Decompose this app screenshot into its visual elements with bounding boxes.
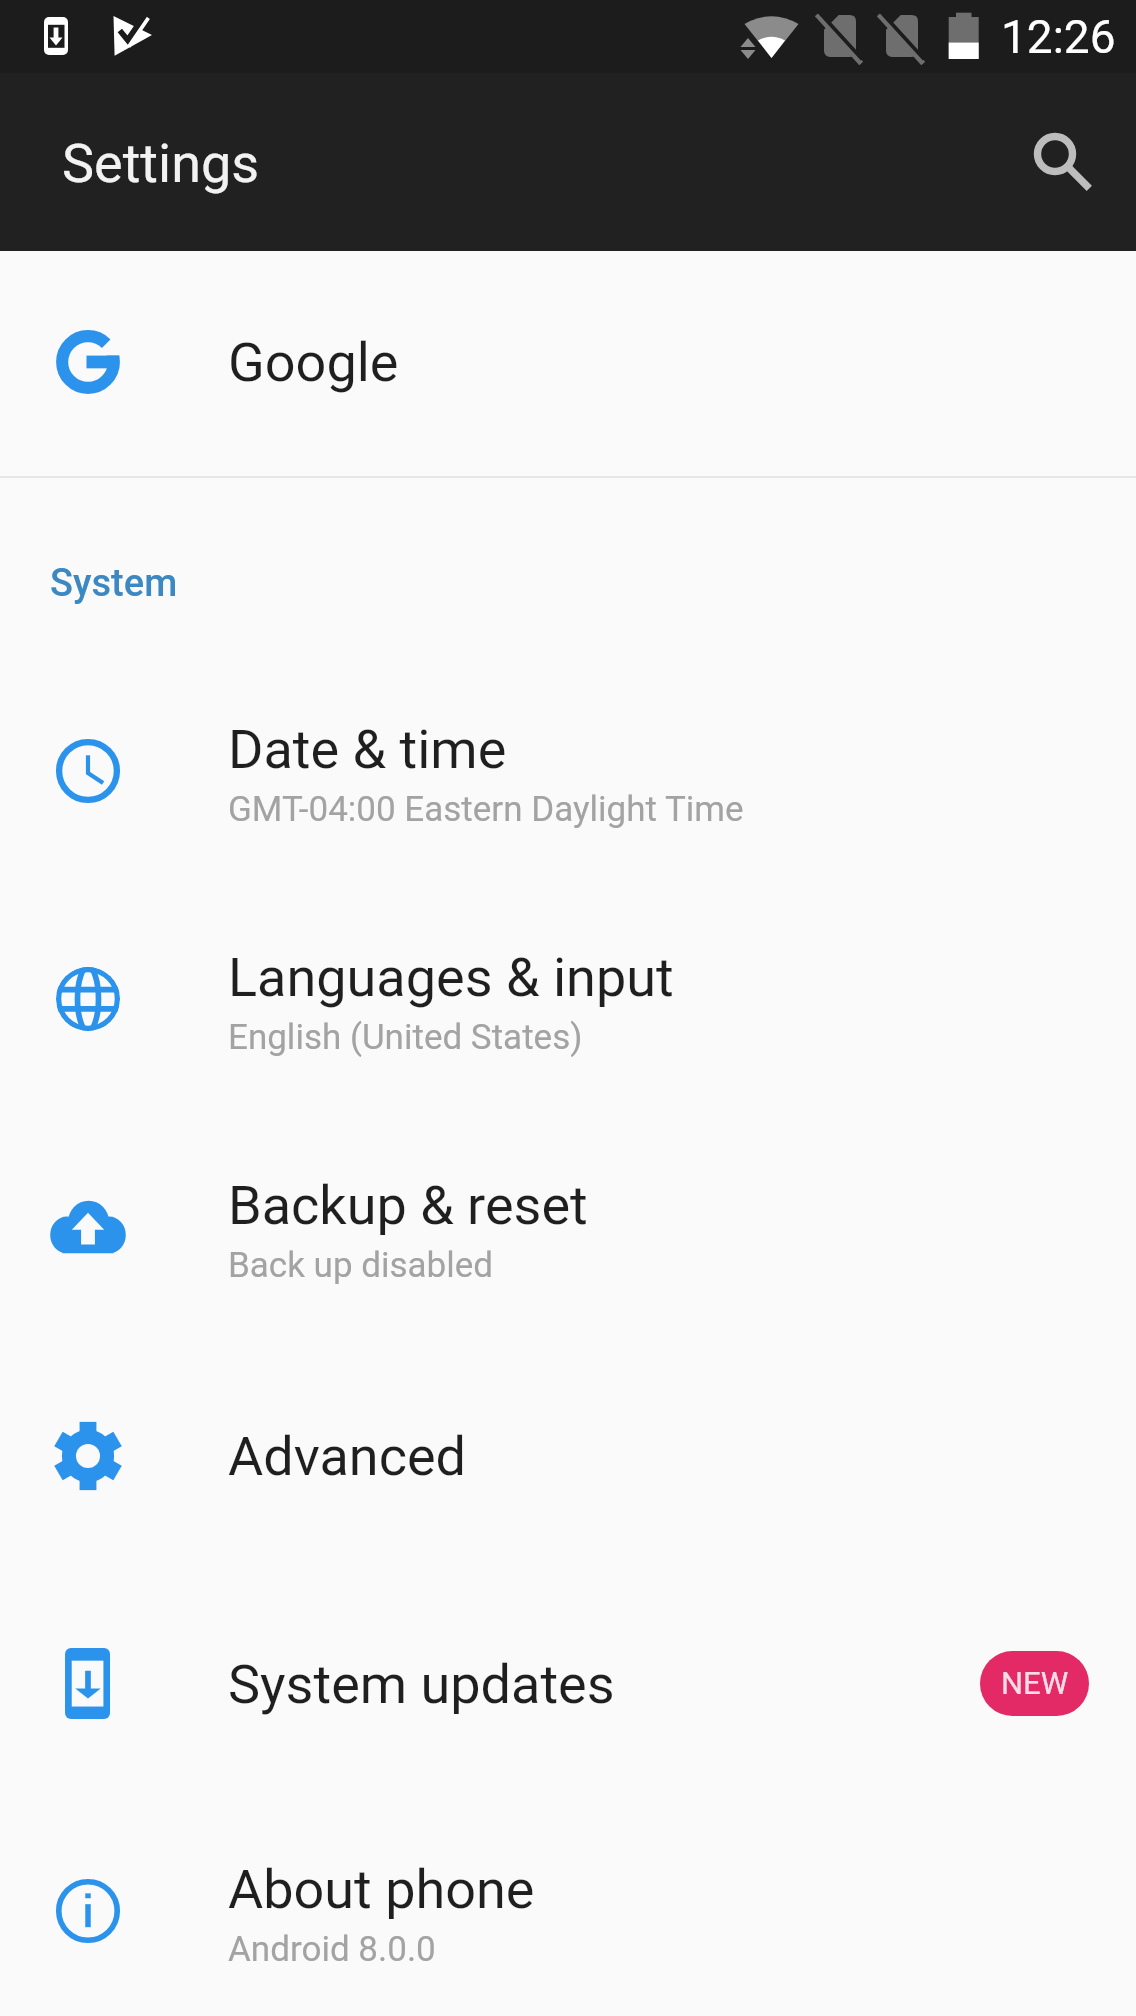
- button[interactable]: Advanced: [0, 1346, 1136, 1576]
- staticText: GMT-04:00 Eastern Daylight Time: [228, 789, 744, 830]
- staticText: Back up disabled: [228, 1245, 494, 1286]
- staticText: Android 8.0.0: [228, 1929, 436, 1970]
- button[interactable]: Languages & input: [0, 886, 1136, 1116]
- staticText: Google: [228, 331, 399, 394]
- button[interactable]: Google: [0, 251, 1136, 476]
- staticText: About phone: [228, 1858, 535, 1921]
- button[interactable]: System updates: [0, 1576, 1136, 1806]
- staticText: System: [50, 561, 178, 606]
- button[interactable]: Search: [1007, 110, 1103, 220]
- staticText: Date & time: [228, 718, 507, 781]
- button[interactable]: Backup & reset: [0, 1116, 1136, 1346]
- staticText: Settings: [62, 132, 260, 195]
- button[interactable]: About phone: [0, 1806, 1136, 2016]
- button[interactable]: Date & time: [0, 656, 1136, 886]
- button[interactable]: NEW: [980, 1651, 1089, 1716]
- staticText: Advanced: [228, 1425, 466, 1488]
- staticText: System updates: [228, 1653, 615, 1716]
- staticText: 12:26: [1001, 10, 1116, 64]
- button: System: [0, 478, 1136, 656]
- staticText: Backup & reset: [228, 1174, 588, 1237]
- staticText: English (United States): [228, 1017, 583, 1058]
- staticText: NEW: [1001, 1665, 1069, 1701]
- staticText: Languages & input: [228, 946, 674, 1009]
